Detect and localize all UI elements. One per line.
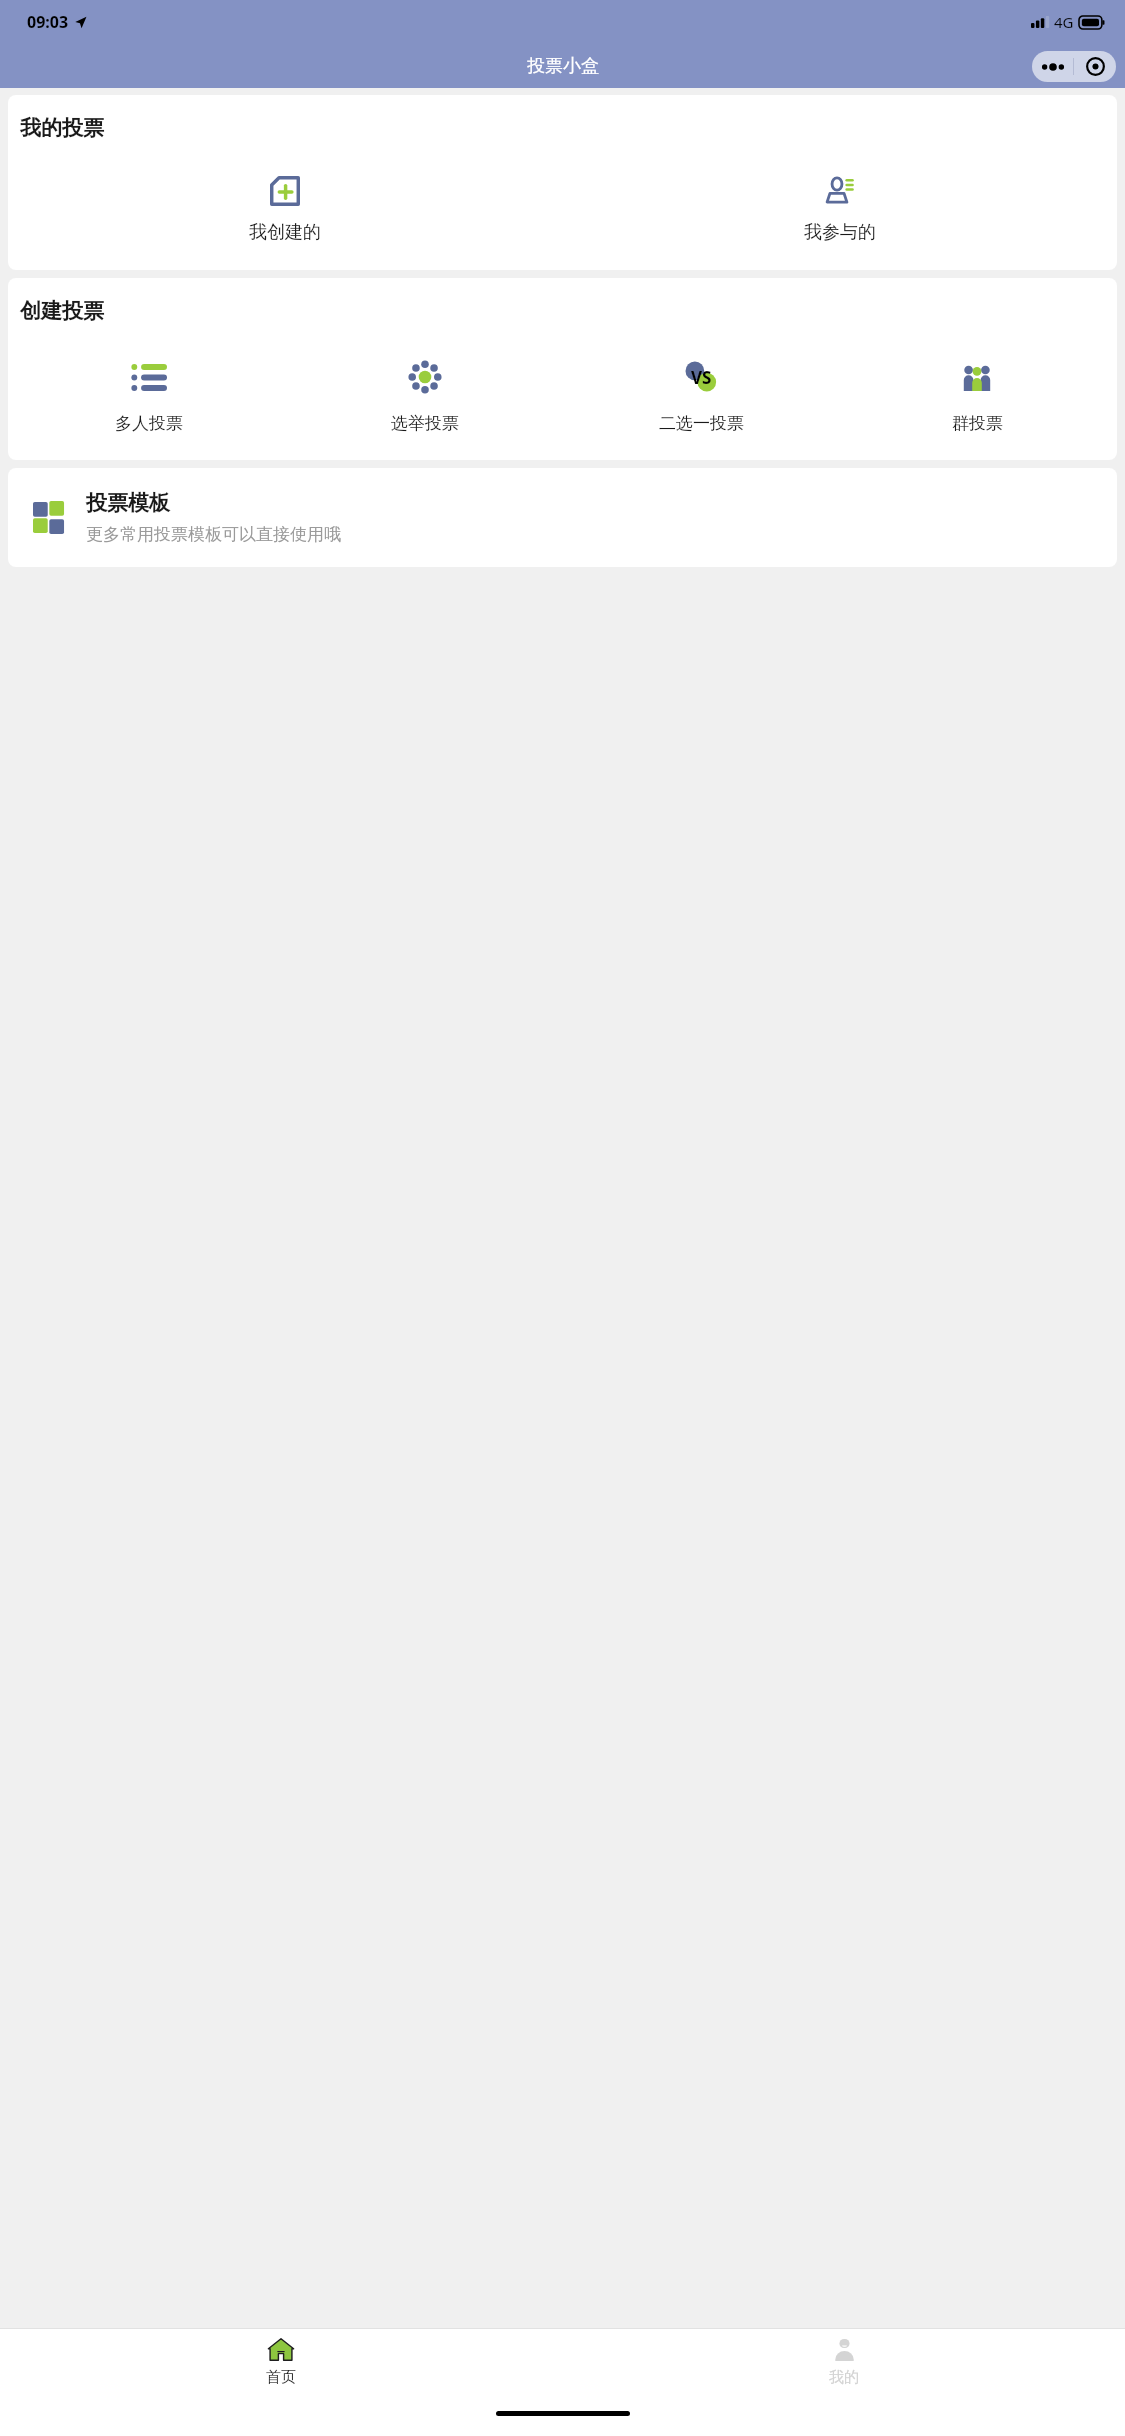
staticText: 4G [1054, 12, 1074, 32]
staticText: 更多常用投票模板可以直接使用哦 [86, 524, 341, 545]
staticText: 我的投票 [20, 115, 104, 141]
button[interactable]: 我创建的 [8, 171, 562, 248]
button[interactable]: More and Close [1032, 51, 1116, 82]
staticText: 选举投票 [391, 413, 459, 434]
staticText: 投票模板 [86, 490, 170, 516]
staticText: 首页 [266, 2368, 296, 2387]
staticText: 创建投票 [20, 298, 104, 324]
button[interactable]: 选举投票 [287, 356, 563, 436]
button[interactable]: VS [563, 356, 839, 436]
staticText: 投票小盒 [527, 55, 599, 78]
staticText: 多人投票 [115, 413, 183, 434]
staticText: VS [691, 366, 712, 389]
button[interactable]: 我参与的 [562, 171, 1117, 248]
staticText: 我创建的 [249, 221, 321, 244]
button[interactable]: 投票模板 [8, 468, 1117, 567]
button[interactable]: 首页 [0, 2329, 562, 2410]
staticText: 二选一投票 [659, 413, 744, 434]
button[interactable]: 多人投票 [10, 356, 287, 436]
button[interactable]: 我的 [562, 2329, 1125, 2410]
staticText: 09:03 [27, 11, 69, 33]
staticText: 群投票 [952, 413, 1003, 434]
button[interactable]: 群投票 [839, 356, 1115, 436]
staticText: 我参与的 [804, 221, 876, 244]
staticText: 我的 [829, 2368, 859, 2387]
